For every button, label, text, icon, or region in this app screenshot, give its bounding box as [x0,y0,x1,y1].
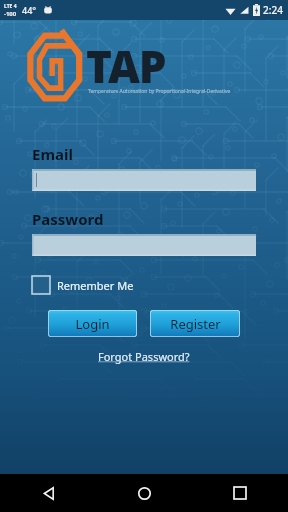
staticText: 44° [22,4,37,16]
staticText: Password [32,209,104,229]
staticText: 2:24 [263,3,283,17]
button[interactable]: Home [96,474,192,512]
staticText: Email [32,144,73,164]
button[interactable]: Register [150,310,240,337]
button[interactable]: Back [0,474,96,512]
staticText: -100 [4,10,17,18]
staticText: Login [75,315,110,333]
button[interactable]: Recent apps [192,474,288,512]
button[interactable]: Remember Me [32,274,134,296]
staticText: TAP [86,36,166,96]
staticText: Register [170,315,221,333]
staticText: LTE 4 [4,3,17,10]
staticText: Temperature Automation by Proportional-I… [88,88,231,95]
button[interactable]: Login [48,310,137,337]
staticText: Remember Me [57,278,134,293]
button[interactable]: Forgot Password? [95,346,193,367]
button[interactable] [32,234,256,256]
button[interactable] [32,169,256,191]
